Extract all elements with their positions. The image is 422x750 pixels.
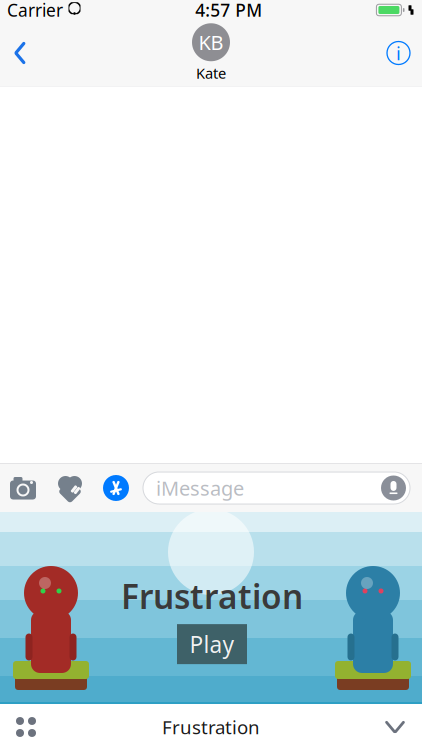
- staticText: Frustration: [162, 715, 260, 739]
- button[interactable]: iMessage Apps: [94, 475, 138, 501]
- staticText: KB: [198, 29, 223, 56]
- button[interactable]: App browser: [0, 705, 52, 749]
- button[interactable]: Expand: [368, 705, 422, 749]
- staticText: iMessage: [156, 475, 244, 501]
- button[interactable]: iMessage: [143, 472, 410, 504]
- staticText: Frustration: [121, 574, 303, 618]
- staticText: Kate: [196, 63, 226, 83]
- button[interactable]: Play: [177, 624, 247, 664]
- staticText: i: [396, 41, 401, 65]
- button[interactable]: Details: [375, 23, 422, 83]
- staticText: Play: [189, 629, 234, 659]
- button[interactable]: Back: [0, 23, 40, 83]
- staticText: Carrier: [7, 0, 63, 21]
- staticText: 4:57 PM: [195, 0, 262, 21]
- button[interactable]: Digital Touch: [46, 475, 94, 500]
- button[interactable]: Camera: [0, 475, 46, 501]
